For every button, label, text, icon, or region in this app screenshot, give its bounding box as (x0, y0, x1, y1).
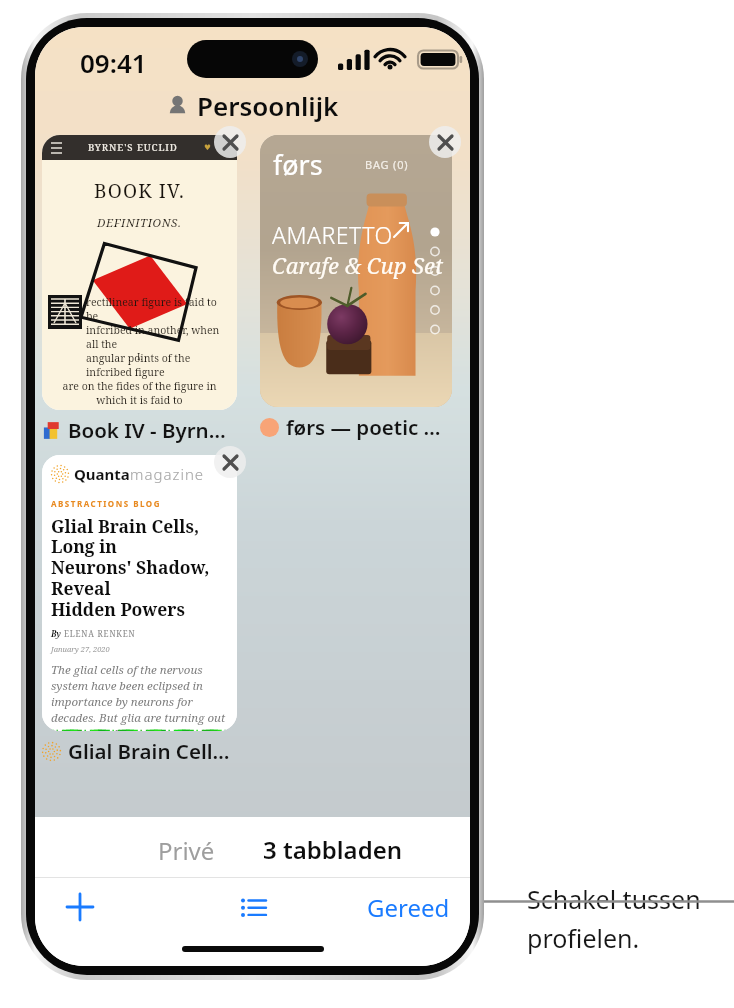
staticText: Book IV - Byrne's Euclid (68, 416, 237, 444)
staticText: I. (137, 350, 143, 362)
staticText: Quanta (74, 464, 130, 484)
staticText: infcribed in another, when all the (86, 323, 231, 351)
staticText: profielen. (527, 921, 640, 955)
button[interactable]: 3 tabbladen (263, 833, 403, 866)
staticText: ELENA RENKEN (64, 628, 136, 639)
staticText: Schakel tussen (527, 882, 701, 916)
staticText: BYRNE'S EUCLID (88, 141, 178, 154)
staticText: Carafe & Cup Set (272, 250, 444, 280)
staticText: BOOK IV. (94, 178, 185, 204)
button[interactable]: Tabbladoverzicht (223, 878, 283, 936)
button[interactable]: Persoonlijk (35, 87, 470, 123)
staticText: rectilinear figure is faid to be (86, 295, 231, 323)
staticText: Persoonlijk (197, 88, 339, 123)
button[interactable]: BYRNE'S EUCLID (42, 135, 237, 444)
staticText: magazine (130, 464, 205, 484)
staticText: January 27, 2020 (51, 644, 110, 654)
button[interactable]: Privé (158, 834, 215, 867)
button[interactable]: Sluit tabblad (214, 446, 246, 478)
staticText: Glial Brain Cells, Long in Neurons' Shad… (51, 514, 228, 622)
staticText: are on the fides of the figure in which … (46, 379, 233, 407)
staticText: BAG (0) (365, 157, 409, 172)
staticText: Glial Brain Cells, Long i… (68, 737, 237, 765)
button[interactable]: Sluit tabblad (429, 126, 461, 158)
button[interactable]: førs (260, 135, 452, 441)
staticText: The glial cells of the nervous system ha… (51, 662, 228, 731)
staticText: ♥ (204, 143, 211, 152)
staticText: angular points of the infcribed figure (86, 351, 231, 379)
staticText: 3 tabbladen (263, 833, 403, 866)
button[interactable]: Gereed (367, 891, 450, 924)
button[interactable]: Nieuw tabblad (49, 878, 111, 936)
staticText: DEFINITIONS. (97, 215, 182, 231)
staticText: Gereed (367, 891, 450, 924)
button[interactable]: Sluit tabblad (214, 126, 246, 158)
staticText: By (51, 628, 61, 639)
staticText: Privé (158, 834, 215, 867)
staticText: 09:41 (80, 45, 147, 80)
staticText: førs — poetic objects (286, 413, 452, 441)
staticText: førs (273, 146, 323, 183)
staticText: AMARETTO (272, 219, 393, 250)
button[interactable]: Quanta (42, 455, 237, 765)
staticText: ABSTRACTIONS BLOG (51, 498, 161, 509)
